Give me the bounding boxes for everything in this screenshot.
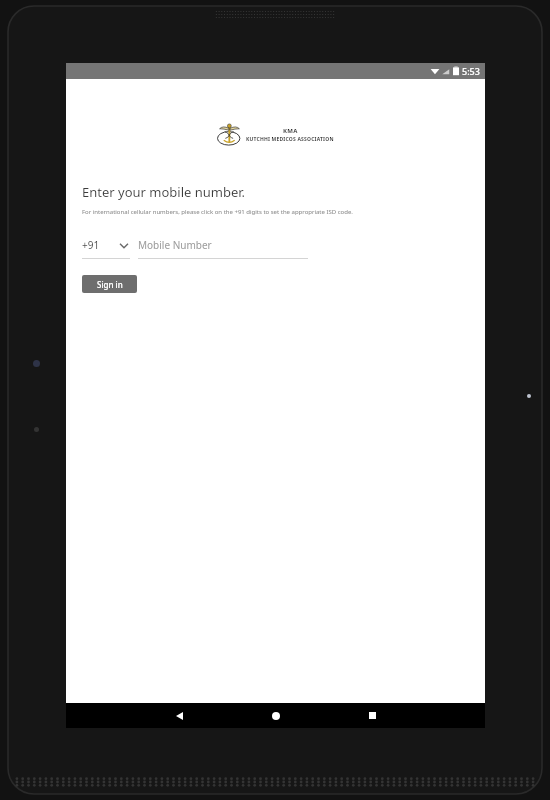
staticText: Enter your mobile number.	[82, 183, 246, 201]
staticText: Mobile Number	[138, 238, 212, 252]
staticText: KUTCHHI MEDICOS ASSOCIATION	[246, 136, 334, 143]
staticText: +91	[82, 238, 100, 252]
staticText: Sign in	[97, 279, 123, 290]
button[interactable]: Recent apps	[359, 703, 385, 728]
staticText: For international cellular numbers, plea…	[82, 208, 353, 216]
staticText: KMA	[283, 127, 298, 135]
button[interactable]: Mobile Number	[138, 238, 308, 259]
button[interactable]: Back	[166, 703, 192, 728]
button[interactable]: +91	[82, 238, 130, 259]
other: Select country code	[120, 243, 128, 248]
button[interactable]: Home	[263, 703, 289, 728]
button[interactable]: Sign in	[82, 275, 137, 293]
staticText: 5:53	[462, 65, 480, 77]
